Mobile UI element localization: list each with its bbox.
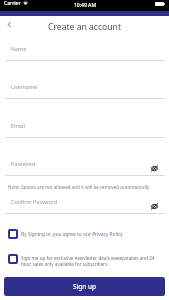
button[interactable]: Show password: [148, 162, 160, 174]
staticText: 10:49 AM: [74, 2, 96, 9]
staticText: Note: Spaces are not allowed and it will…: [8, 184, 150, 190]
staticText: Name: [11, 45, 27, 52]
staticText: Username: [11, 83, 38, 90]
button[interactable]: Show password: [148, 200, 160, 212]
staticText: Email: [11, 122, 25, 129]
staticText: By Signing in, you agree to our Privacy …: [21, 231, 123, 238]
staticText: Carrier: [4, 0, 21, 7]
staticText: Create an account: [48, 21, 122, 33]
staticText: Sign me up for exclusive newsletter deal…: [21, 255, 157, 267]
staticText: Confirm Password: [11, 198, 58, 205]
button[interactable]: Sign up: [4, 277, 165, 296]
staticText: Sign up: [73, 282, 96, 291]
button[interactable]: Sign me up for exclusive newsletter deal…: [8, 254, 167, 267]
staticText: Password: [11, 160, 36, 167]
button[interactable]: Back: [3, 18, 15, 30]
button[interactable]: By Signing in, you agree to our Privacy …: [8, 229, 164, 239]
